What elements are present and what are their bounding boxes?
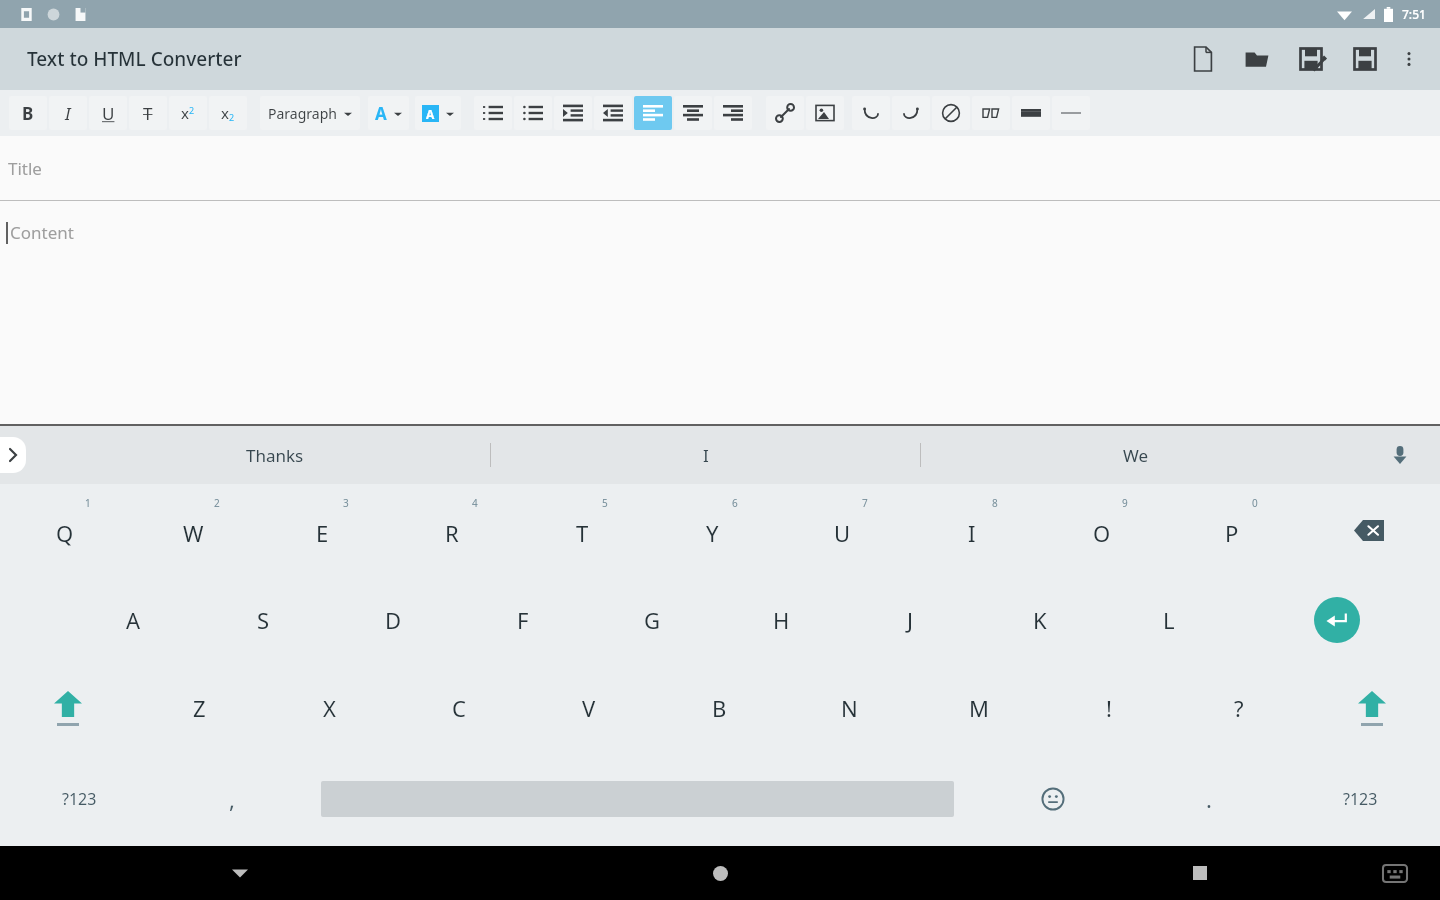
button[interactable]: x xyxy=(209,96,247,130)
button[interactable]: Code block xyxy=(1012,96,1050,130)
button[interactable]: Bullet list xyxy=(514,96,552,130)
button[interactable]: C xyxy=(394,664,524,752)
button[interactable]: Recent apps xyxy=(960,846,1440,900)
button[interactable]: Shift xyxy=(0,664,135,752)
button[interactable]: M xyxy=(914,664,1044,752)
staticText: F xyxy=(517,605,529,635)
button[interactable]: Undo xyxy=(852,96,890,130)
button[interactable]: Save as xyxy=(1284,32,1338,86)
button[interactable]: Horizontal rule xyxy=(1052,96,1090,130)
button[interactable]: H xyxy=(717,576,846,664)
button[interactable]: Hide keyboard xyxy=(0,846,480,900)
button[interactable]: Numbered list xyxy=(474,96,512,130)
button[interactable]: B xyxy=(654,664,784,752)
button[interactable]: I xyxy=(49,96,87,130)
button[interactable]: . xyxy=(1136,752,1281,846)
button[interactable]: E xyxy=(258,484,387,576)
staticText: 3 xyxy=(343,496,349,510)
staticText: U xyxy=(102,102,115,125)
button[interactable]: Align left xyxy=(634,96,672,130)
button[interactable]: W xyxy=(129,484,258,576)
staticText: 2 xyxy=(214,496,220,510)
button[interactable]: K xyxy=(975,576,1104,664)
button[interactable]: Align center xyxy=(674,96,712,130)
button[interactable]: Insert image xyxy=(806,96,844,130)
button[interactable]: Background color xyxy=(415,96,461,130)
button[interactable]: Emoji xyxy=(970,752,1136,846)
staticText: ?123 xyxy=(62,788,97,810)
staticText: 5 xyxy=(602,496,608,510)
button[interactable]: Thanks xyxy=(60,426,490,484)
button[interactable]: U xyxy=(89,96,127,130)
button[interactable]: Redo xyxy=(892,96,930,130)
staticText: Q xyxy=(56,518,74,548)
button[interactable]: Clear formatting xyxy=(932,96,970,130)
button[interactable]: ?123 xyxy=(1281,752,1440,846)
button[interactable]: Expand suggestions xyxy=(0,437,26,473)
button[interactable]: Q xyxy=(0,484,129,576)
staticText: 8 xyxy=(992,496,998,510)
button[interactable]: ! xyxy=(1044,664,1174,752)
button[interactable]: I xyxy=(491,426,920,484)
staticText: P xyxy=(1225,518,1239,548)
button[interactable]: Enter xyxy=(1233,576,1440,664)
button[interactable]: U xyxy=(777,484,907,576)
button[interactable]: Text color xyxy=(368,96,409,130)
staticText: J xyxy=(907,605,914,635)
button[interactable]: P xyxy=(1167,484,1297,576)
staticText: x xyxy=(181,103,189,123)
button[interactable]: Decrease indent xyxy=(594,96,632,130)
button[interactable]: Space xyxy=(304,752,970,846)
button[interactable]: S xyxy=(198,576,328,664)
staticText: Text to HTML Converter xyxy=(27,46,242,72)
button[interactable]: x xyxy=(169,96,207,130)
button[interactable]: Backspace xyxy=(1297,484,1440,576)
button[interactable]: J xyxy=(846,576,975,664)
button[interactable]: We xyxy=(921,426,1350,484)
button[interactable]: , xyxy=(159,752,304,846)
button[interactable]: F xyxy=(458,576,588,664)
staticText: Thanks xyxy=(246,444,304,467)
button[interactable]: I xyxy=(907,484,1037,576)
button[interactable]: Save xyxy=(1338,32,1392,86)
button[interactable]: ? xyxy=(1174,664,1304,752)
button[interactable]: T xyxy=(517,484,647,576)
button[interactable]: D xyxy=(328,576,458,664)
button[interactable]: N xyxy=(784,664,914,752)
button[interactable]: New document xyxy=(1176,32,1230,86)
button[interactable]: R xyxy=(387,484,517,576)
button[interactable]: Quote xyxy=(972,96,1010,130)
button[interactable]: O xyxy=(1037,484,1167,576)
button[interactable]: Insert link xyxy=(766,96,804,130)
button[interactable]: Voice input xyxy=(1382,437,1418,473)
staticText: Z xyxy=(193,693,206,723)
button[interactable]: B xyxy=(9,96,47,130)
button[interactable]: Open xyxy=(1230,32,1284,86)
staticText: x xyxy=(221,103,229,123)
staticText: Content xyxy=(10,221,74,244)
staticText: B xyxy=(712,693,727,723)
button[interactable]: Increase indent xyxy=(554,96,592,130)
button[interactable]: V xyxy=(524,664,654,752)
staticText: L xyxy=(1163,605,1175,635)
button[interactable]: X xyxy=(264,664,394,752)
button[interactable]: Paragraph xyxy=(260,96,360,130)
staticText: I xyxy=(65,102,71,125)
button[interactable]: Title xyxy=(0,136,1440,200)
button[interactable]: Home xyxy=(480,846,960,900)
button[interactable]: Align right xyxy=(714,96,752,130)
staticText: 6 xyxy=(732,496,738,510)
button[interactable]: ?123 xyxy=(0,752,159,846)
button[interactable]: Shift xyxy=(1304,664,1440,752)
staticText: ? xyxy=(1234,693,1244,723)
button[interactable]: A xyxy=(68,576,198,664)
button[interactable]: Z xyxy=(135,664,264,752)
button[interactable]: L xyxy=(1104,576,1233,664)
button[interactable]: More options xyxy=(1392,42,1426,76)
button[interactable]: T xyxy=(129,96,167,130)
staticText: R xyxy=(445,518,459,548)
button[interactable]: G xyxy=(588,576,717,664)
button[interactable]: Change keyboard xyxy=(1378,856,1412,890)
button[interactable]: Y xyxy=(647,484,777,576)
